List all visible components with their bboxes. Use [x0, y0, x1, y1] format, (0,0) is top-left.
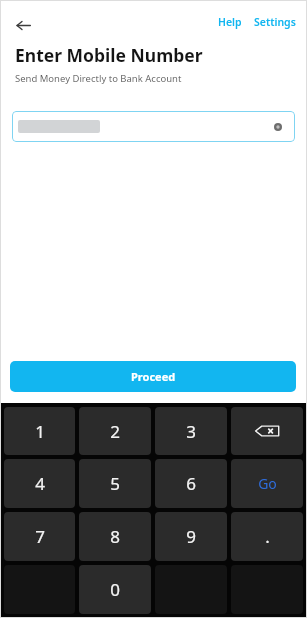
button[interactable]: 8	[79, 512, 151, 561]
staticText: 5	[110, 472, 120, 495]
staticText: Send Money Directly to Bank Account	[15, 72, 182, 85]
staticText: Proceed	[131, 369, 176, 384]
staticText: 9	[186, 525, 196, 548]
staticText: .	[265, 525, 270, 548]
button[interactable]: 9	[155, 512, 227, 561]
staticText: Enter Mobile Number	[15, 43, 203, 67]
staticText: 1	[35, 420, 45, 443]
button[interactable]: 3	[155, 407, 227, 455]
button[interactable]: Proceed	[10, 361, 296, 392]
button[interactable]: .	[231, 512, 303, 561]
staticText: Go	[258, 474, 277, 493]
staticText: 3	[186, 420, 196, 443]
button[interactable]: 7	[4, 512, 75, 561]
staticText: Help	[218, 15, 242, 29]
button[interactable]: Clear	[269, 118, 287, 136]
button[interactable]: 6	[155, 459, 227, 508]
staticText: 0	[110, 578, 120, 601]
button[interactable]: Settings	[251, 13, 299, 31]
button[interactable]: 5	[79, 459, 151, 508]
button[interactable]: 0	[79, 565, 151, 614]
staticText: 4	[35, 472, 45, 495]
staticText: 7	[35, 525, 45, 548]
button[interactable]: Backspace	[231, 407, 303, 455]
button[interactable]: Go	[231, 459, 303, 508]
staticText: 8	[110, 525, 120, 548]
staticText: Settings	[254, 15, 296, 29]
button[interactable]: Back	[8, 10, 38, 40]
button[interactable]: Clear	[12, 111, 295, 142]
staticText: 2	[110, 420, 120, 443]
button[interactable]: Help	[215, 13, 245, 31]
button[interactable]: 1	[4, 407, 75, 455]
button[interactable]: 2	[79, 407, 151, 455]
staticText: 6	[186, 472, 196, 495]
button[interactable]: 4	[4, 459, 75, 508]
